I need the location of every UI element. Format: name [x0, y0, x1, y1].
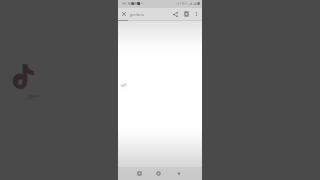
- button[interactable]: Recents: [135, 169, 144, 178]
- button[interactable]: Home: [154, 169, 163, 178]
- button[interactable]: Share: [170, 8, 181, 20]
- button[interactable]: Close: [118, 8, 129, 20]
- button[interactable]: Reader view: [181, 8, 192, 20]
- button[interactable]: More options: [191, 8, 202, 20]
- staticText: gorila.io: [130, 12, 144, 17]
- button[interactable]: Back: [174, 169, 183, 178]
